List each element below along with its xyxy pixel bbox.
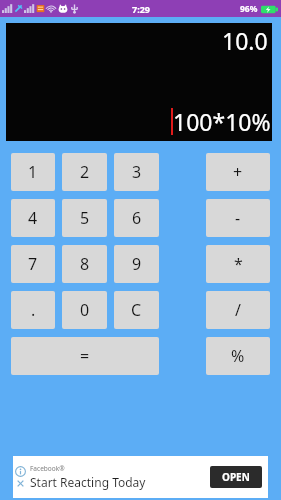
staticText: = xyxy=(80,345,90,367)
button[interactable]: OPEN xyxy=(210,466,262,488)
button[interactable]: 1 xyxy=(11,153,55,191)
staticText: % xyxy=(231,345,245,367)
staticText: 5 xyxy=(80,207,90,229)
staticText: 7:29 xyxy=(132,3,150,15)
button[interactable]: = xyxy=(11,337,159,375)
button[interactable]: 0 xyxy=(62,291,107,329)
button[interactable]: 9 xyxy=(114,245,159,283)
staticText: 10.0 xyxy=(222,25,268,56)
staticText: 3 xyxy=(132,161,142,183)
staticText: 96% xyxy=(240,3,258,15)
staticText: / xyxy=(235,299,241,321)
button[interactable]: / xyxy=(206,291,270,329)
staticText: Start Reacting Today xyxy=(30,474,146,490)
staticText: 1 xyxy=(28,161,38,183)
button[interactable]: Close ad xyxy=(15,478,26,489)
staticText: 100*10% xyxy=(173,106,271,137)
staticText: . xyxy=(31,299,36,321)
button[interactable]: . xyxy=(11,291,55,329)
staticText: 2 xyxy=(80,161,90,183)
staticText: * xyxy=(234,253,243,275)
staticText: 8 xyxy=(80,253,90,275)
staticText: 7 xyxy=(28,253,38,275)
button[interactable]: 6 xyxy=(114,199,159,237)
staticText: 0 xyxy=(80,299,90,321)
button[interactable]: 5 xyxy=(62,199,107,237)
button[interactable]: 2 xyxy=(62,153,107,191)
button[interactable]: + xyxy=(206,153,270,191)
button[interactable]: - xyxy=(206,199,270,237)
staticText: OPEN xyxy=(222,470,250,484)
staticText: Facebook® xyxy=(30,464,65,473)
button[interactable]: % xyxy=(206,337,270,375)
staticText: + xyxy=(233,161,243,183)
staticText: 9 xyxy=(132,253,142,275)
staticText: - xyxy=(235,207,241,229)
button[interactable]: 8 xyxy=(62,245,107,283)
staticText: C xyxy=(131,299,142,321)
button[interactable]: Ad information xyxy=(13,456,268,498)
button[interactable]: 7 xyxy=(11,245,55,283)
button[interactable]: 4 xyxy=(11,199,55,237)
staticText: 4 xyxy=(28,207,38,229)
button[interactable]: * xyxy=(206,245,270,283)
button[interactable]: Ad information xyxy=(15,466,26,477)
button[interactable]: 3 xyxy=(114,153,159,191)
staticText: 6 xyxy=(132,207,142,229)
button[interactable]: C xyxy=(114,291,159,329)
